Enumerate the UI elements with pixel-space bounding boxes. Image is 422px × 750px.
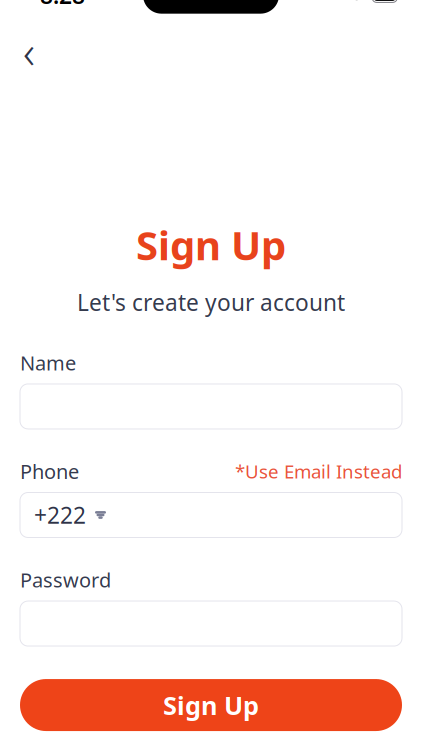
button[interactable]: +222: [0, 492, 422, 537]
staticText: *Use Email Instead: [235, 459, 402, 484]
button[interactable]: Back: [12, 34, 46, 68]
staticText: +222: [34, 500, 86, 530]
staticText: Phone: [20, 458, 79, 484]
button[interactable]: *Use Email Instead: [235, 459, 402, 484]
button[interactable]: Sign Up: [0, 679, 422, 731]
staticText: Name: [20, 349, 76, 376]
staticText: Let's create your account: [77, 287, 345, 317]
staticText: 8:28: [40, 0, 85, 10]
staticText: Sign Up: [136, 218, 286, 271]
staticText: ‹: [23, 21, 35, 81]
staticText: Password: [20, 566, 111, 593]
staticText: Sign Up: [163, 688, 259, 722]
